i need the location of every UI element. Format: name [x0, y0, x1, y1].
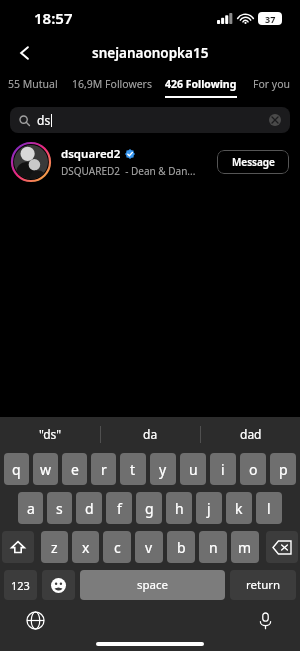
button[interactable]: u [180, 453, 206, 485]
staticText: d [85, 499, 94, 518]
button[interactable]: f [106, 492, 132, 524]
button[interactable]: p [270, 453, 296, 485]
staticText: h [175, 499, 184, 518]
button[interactable]: s [47, 492, 72, 524]
button[interactable]: For you [243, 70, 300, 98]
button[interactable]: z [41, 531, 68, 563]
button[interactable]: k [226, 492, 252, 524]
staticText: f [117, 499, 122, 518]
staticText: g [145, 499, 154, 518]
staticText: i [221, 460, 225, 479]
staticText: e [71, 460, 79, 479]
staticText: For you [253, 77, 291, 91]
staticText: Message [232, 155, 275, 169]
staticText: k [235, 499, 243, 518]
button[interactable]: x [72, 531, 99, 563]
staticText: ds [37, 112, 51, 128]
staticText: m [238, 538, 252, 557]
staticText: p [279, 460, 288, 479]
staticText: j [207, 499, 211, 518]
button[interactable]: 123 [4, 570, 37, 600]
staticText: z [51, 538, 58, 557]
button[interactable]: da [101, 419, 200, 449]
staticText: x [82, 538, 90, 557]
button[interactable]: dad [201, 419, 300, 449]
staticText: "ds" [39, 426, 62, 442]
staticText: 37 [265, 13, 276, 25]
button[interactable]: Emoji [42, 570, 75, 600]
button[interactable]: b [167, 531, 195, 563]
staticText: n [209, 538, 218, 557]
button[interactable]: a [18, 492, 43, 524]
staticText: w [40, 460, 52, 479]
staticText: da [143, 426, 158, 442]
staticText: q [12, 460, 21, 479]
button[interactable]: 426 Following [159, 70, 243, 98]
button[interactable]: 55 Mutual [0, 70, 65, 98]
staticText: 18:57 [34, 8, 73, 28]
staticText: c [114, 538, 121, 557]
staticText: DSQUARED2 - Dean & Dan... [61, 164, 196, 178]
staticText: o [249, 460, 258, 479]
button[interactable]: o [240, 453, 266, 485]
staticText: t [130, 460, 136, 479]
button[interactable]: Backspace [266, 531, 298, 563]
button[interactable]: Shift [2, 531, 34, 563]
button[interactable]: j [196, 492, 222, 524]
staticText: 55 Mutual [8, 77, 58, 91]
button[interactable]: space [80, 570, 225, 600]
staticText: a [27, 499, 35, 518]
button[interactable]: t [120, 453, 146, 485]
button[interactable]: l [256, 492, 282, 524]
button[interactable]: h [166, 492, 192, 524]
staticText: snejanaonopka15 [92, 44, 209, 62]
button[interactable]: y [150, 453, 176, 485]
staticText: space [137, 577, 169, 593]
button[interactable]: q [4, 453, 29, 485]
button[interactable]: e [62, 453, 87, 485]
button[interactable]: c [103, 531, 131, 563]
staticText: v [145, 538, 153, 557]
staticText: u [189, 460, 198, 479]
button[interactable]: v [135, 531, 163, 563]
button[interactable]: Back [8, 36, 42, 70]
button[interactable]: "ds" [0, 419, 100, 449]
button[interactable]: w [33, 453, 58, 485]
staticText: return [246, 577, 281, 593]
button[interactable]: dsquared2 [0, 140, 300, 184]
staticText: l [267, 499, 271, 518]
button[interactable]: n [199, 531, 227, 563]
button[interactable]: i [210, 453, 236, 485]
button[interactable]: r [91, 453, 116, 485]
button[interactable]: Change keyboard [22, 607, 48, 633]
staticText: dsquared2 [61, 146, 121, 162]
staticText: dad [240, 426, 262, 442]
staticText: b [177, 538, 186, 557]
staticText: 123 [11, 578, 30, 593]
button[interactable]: Message [217, 150, 289, 174]
button[interactable]: return [230, 570, 296, 600]
button[interactable]: d [76, 492, 102, 524]
button[interactable]: g [136, 492, 162, 524]
staticText: s [56, 499, 63, 518]
button[interactable]: Clear [269, 114, 281, 126]
staticText: 16,9M Followers [72, 77, 152, 91]
button[interactable]: Voice input [252, 607, 278, 633]
staticText: 426 Following [165, 77, 237, 91]
button[interactable]: 16,9M Followers [65, 70, 159, 98]
button[interactable]: m [231, 531, 259, 563]
button[interactable]: ds [10, 107, 290, 133]
staticText: r [101, 460, 107, 479]
staticText: y [159, 460, 167, 479]
